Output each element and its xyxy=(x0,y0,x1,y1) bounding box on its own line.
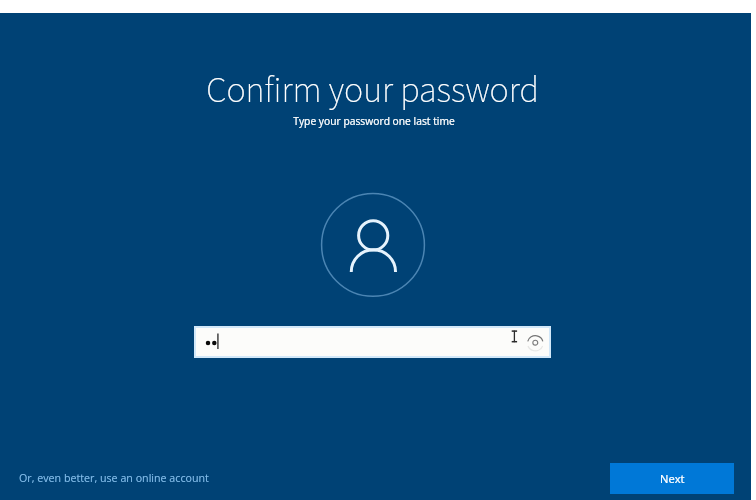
staticText: Or, even better, use an online account xyxy=(19,471,209,486)
staticText: Next xyxy=(660,471,685,486)
staticText: Type your password one last time xyxy=(293,114,455,128)
button[interactable]: Or, even better, use an online account xyxy=(11,463,217,494)
button[interactable]: Password xyxy=(194,326,551,358)
other: Account picture xyxy=(315,187,433,317)
button[interactable]: Next xyxy=(610,463,734,494)
staticText: Confirm your password xyxy=(206,65,539,116)
